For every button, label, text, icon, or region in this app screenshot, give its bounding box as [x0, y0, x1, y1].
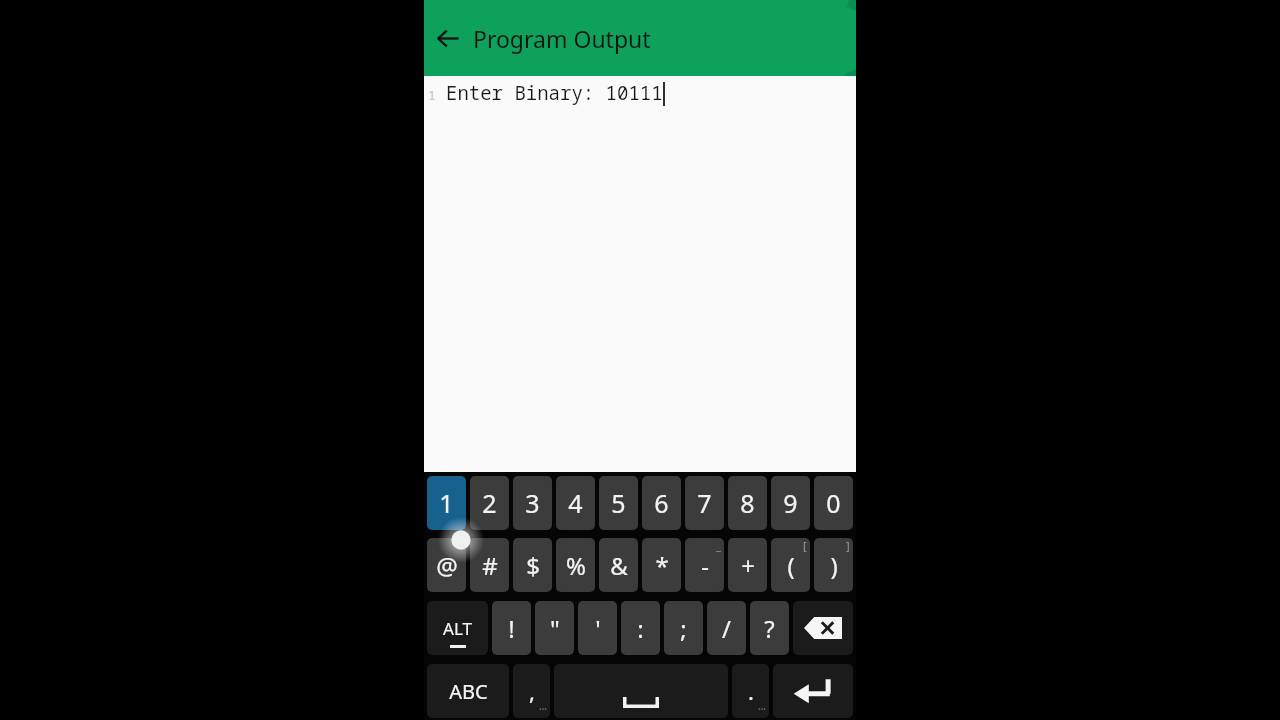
- button[interactable]: 8: [728, 476, 767, 530]
- button[interactable]: ,: [513, 664, 550, 718]
- staticText: ]: [846, 538, 850, 553]
- staticText: 5: [611, 486, 626, 520]
- staticText: •••: [539, 705, 547, 715]
- staticText: ': [595, 612, 601, 645]
- button[interactable]: ': [578, 601, 617, 655]
- staticText: 4: [568, 486, 583, 520]
- staticText: +: [741, 549, 755, 582]
- staticText: 3: [525, 486, 540, 520]
- button[interactable]: ;: [664, 601, 703, 655]
- button[interactable]: @: [427, 538, 466, 592]
- button[interactable]: ABC: [427, 664, 509, 718]
- staticText: (: [787, 549, 795, 582]
- button[interactable]: &: [599, 538, 638, 592]
- button[interactable]: -: [685, 538, 724, 592]
- staticText: ALT: [443, 617, 472, 640]
- button[interactable]: #: [470, 538, 509, 592]
- staticText: 1: [428, 86, 446, 104]
- staticText: %: [566, 549, 586, 582]
- staticText: /: [722, 612, 731, 645]
- button[interactable]: ): [814, 538, 853, 592]
- button[interactable]: (: [771, 538, 810, 592]
- staticText: Program Output: [473, 23, 651, 54]
- staticText: 8: [740, 486, 755, 520]
- staticText: ;: [680, 612, 687, 645]
- staticText: 2: [482, 486, 497, 520]
- button[interactable]: ALT: [427, 601, 488, 655]
- staticText: !: [508, 612, 515, 645]
- button[interactable]: 2: [470, 476, 509, 530]
- button[interactable]: +: [728, 538, 767, 592]
- button[interactable]: ": [535, 601, 574, 655]
- staticText: $: [526, 549, 540, 582]
- staticText: #: [482, 549, 498, 582]
- button[interactable]: !: [492, 601, 531, 655]
- staticText: 6: [654, 486, 669, 520]
- staticText: @: [436, 549, 458, 582]
- staticText: ): [830, 549, 838, 582]
- button[interactable]: /: [707, 601, 746, 655]
- button[interactable]: 0: [814, 476, 853, 530]
- button[interactable]: :: [621, 601, 660, 655]
- button[interactable]: Back: [424, 15, 470, 61]
- staticText: .: [748, 676, 754, 706]
- staticText: ": [550, 612, 560, 645]
- staticText: _: [716, 538, 721, 553]
- staticText: ,: [529, 676, 535, 706]
- button[interactable]: Backspace: [793, 601, 853, 655]
- staticText: -: [701, 549, 709, 582]
- button[interactable]: 7: [685, 476, 724, 530]
- button[interactable]: *: [642, 538, 681, 592]
- button[interactable]: 9: [771, 476, 810, 530]
- staticText: &: [610, 549, 628, 582]
- staticText: *: [655, 549, 669, 582]
- staticText: 9: [783, 486, 798, 520]
- button[interactable]: ?: [750, 601, 789, 655]
- button[interactable]: 4: [556, 476, 595, 530]
- staticText: Enter Binary: 10111: [446, 80, 663, 106]
- button[interactable]: 5: [599, 476, 638, 530]
- button[interactable]: 6: [642, 476, 681, 530]
- staticText: 1: [439, 486, 454, 520]
- staticText: 0: [826, 486, 841, 520]
- button[interactable]: Enter: [773, 664, 853, 718]
- button[interactable]: 1: [427, 476, 466, 530]
- button[interactable]: Space: [554, 664, 728, 718]
- staticText: [: [803, 538, 807, 553]
- staticText: ?: [764, 612, 775, 645]
- staticText: ABC: [449, 678, 488, 705]
- staticText: •••: [758, 705, 766, 715]
- button[interactable]: %: [556, 538, 595, 592]
- button[interactable]: 3: [513, 476, 552, 530]
- staticText: 7: [697, 486, 712, 520]
- button[interactable]: .: [732, 664, 769, 718]
- button[interactable]: $: [513, 538, 552, 592]
- staticText: :: [637, 612, 644, 645]
